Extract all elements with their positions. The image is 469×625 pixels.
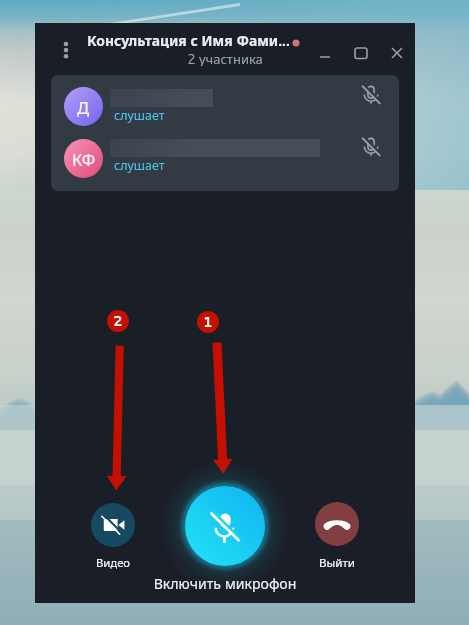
button[interactable]: Maximize [350,42,372,64]
button[interactable] [51,87,399,127]
staticText: Выйти [265,555,409,571]
staticText: 1 [203,313,213,331]
button[interactable]: Turn off video [91,503,135,547]
staticText: слушает [114,107,165,123]
staticText: Видео [41,555,185,571]
button[interactable]: Muted [361,137,381,157]
staticText: Включить микрофон [35,574,415,592]
staticText: КФ [72,148,96,170]
staticText: 2 участника [35,50,415,66]
button[interactable]: Muted [361,85,381,105]
staticText: слушает [114,157,165,173]
button[interactable]: Консультация с Имя Фами... [87,29,301,53]
button[interactable] [51,139,399,179]
button[interactable]: More options [56,32,76,68]
staticText: 2 [113,312,123,330]
button[interactable]: Turn on microphone [185,486,265,566]
button[interactable]: Close [386,42,408,64]
button[interactable]: Leave call [315,502,359,546]
button[interactable]: Minimize [314,45,336,67]
staticText: Консультация с Имя Фами... [87,31,290,51]
staticText: Д [77,96,90,118]
